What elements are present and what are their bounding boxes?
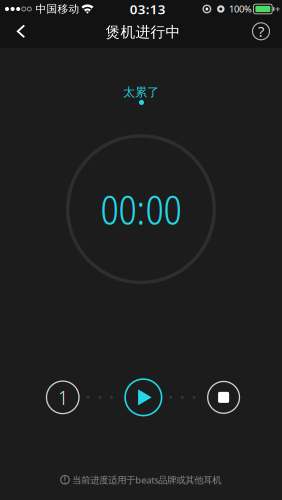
button[interactable]: Play	[125, 379, 162, 416]
staticText: 太累了	[123, 85, 159, 100]
staticText: 1	[58, 384, 67, 411]
staticText: 00:00	[100, 182, 181, 236]
staticText: 中国移动	[35, 2, 79, 15]
button[interactable]: Help	[241, 18, 279, 48]
staticText: 03:13	[130, 0, 166, 18]
staticText: 当前进度适用于beats品牌或其他耳机	[72, 474, 221, 486]
staticText: 煲机进行中	[105, 23, 180, 41]
staticText: ?	[258, 22, 264, 41]
button[interactable]: Back	[2, 18, 40, 48]
button[interactable]: Stop	[208, 381, 239, 413]
staticText: 100%	[229, 3, 252, 15]
button[interactable]: Step 1	[46, 381, 79, 414]
staticText: !	[63, 474, 66, 486]
staticText: +	[275, 3, 280, 15]
